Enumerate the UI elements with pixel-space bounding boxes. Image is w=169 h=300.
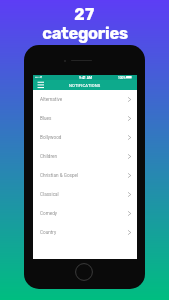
staticText: Country	[40, 230, 57, 235]
button[interactable]: Open navigation menu	[33, 80, 44, 90]
staticText: Comedy	[40, 211, 58, 216]
button[interactable]: Christian & Gospel	[33, 166, 137, 185]
staticText: 100%	[118, 76, 126, 80]
button[interactable]: Alternative	[33, 90, 137, 109]
button[interactable]: Blues	[33, 109, 137, 128]
button[interactable]: Children	[33, 147, 137, 166]
staticText: 9:41 AM	[79, 76, 92, 80]
button[interactable]: Comedy	[33, 204, 137, 223]
staticText: NOTIFICATIONS	[69, 83, 101, 88]
staticText: Classical	[40, 192, 59, 197]
staticText: Children	[40, 154, 58, 159]
button[interactable]: Bollywood	[33, 128, 137, 147]
staticText: Blues	[40, 116, 52, 121]
staticText: Bollywood	[40, 135, 62, 140]
staticText: Alternative	[40, 97, 63, 102]
staticText: 27	[74, 5, 95, 24]
staticText: Christian & Gospel	[40, 173, 79, 178]
button[interactable]: Classical	[33, 185, 137, 204]
button[interactable]: Country	[33, 223, 137, 242]
staticText: categories	[42, 24, 128, 44]
